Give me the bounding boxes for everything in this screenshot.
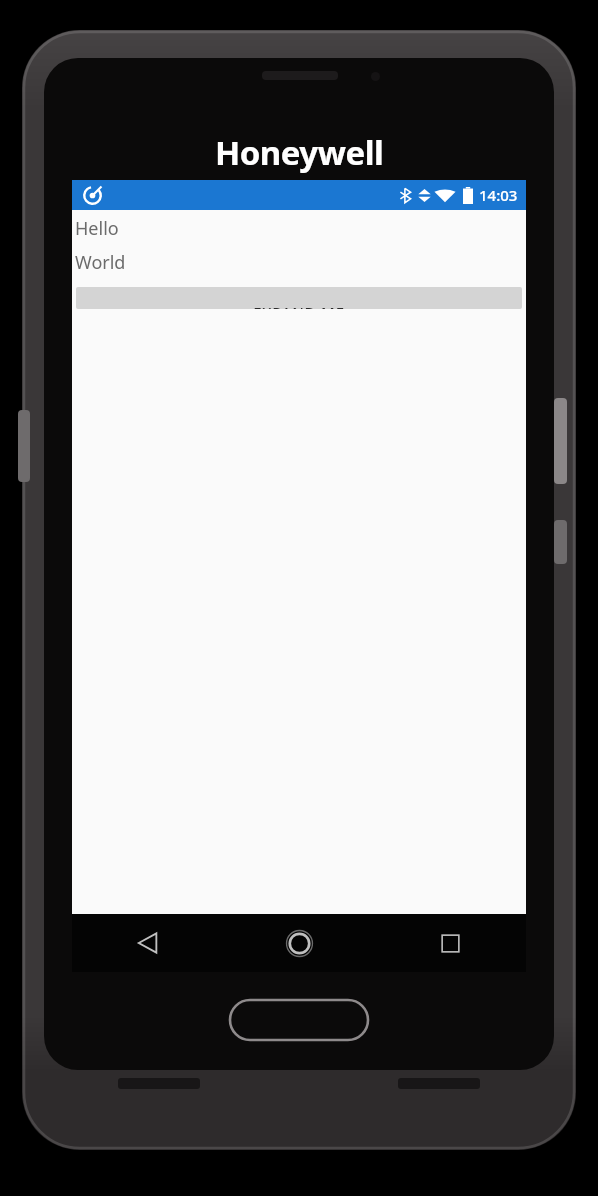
button[interactable]: Home	[224, 914, 375, 972]
staticText: Hello	[75, 216, 119, 241]
button[interactable]: EXPAND ME	[76, 287, 522, 309]
staticText: EXPAND ME	[76, 302, 522, 309]
button[interactable]: App notification	[81, 184, 103, 206]
staticText: World	[75, 250, 126, 275]
staticText: Honeywell	[215, 130, 384, 175]
button[interactable]: Right scan key	[554, 398, 567, 484]
button[interactable]: Recent apps	[375, 914, 526, 972]
button[interactable]: Left scan key	[18, 410, 30, 482]
button[interactable]: Volume key	[554, 520, 567, 564]
button[interactable]: Back	[72, 914, 224, 972]
button[interactable]: Home hardware key	[230, 1000, 368, 1040]
staticText: 14:03	[479, 185, 518, 205]
